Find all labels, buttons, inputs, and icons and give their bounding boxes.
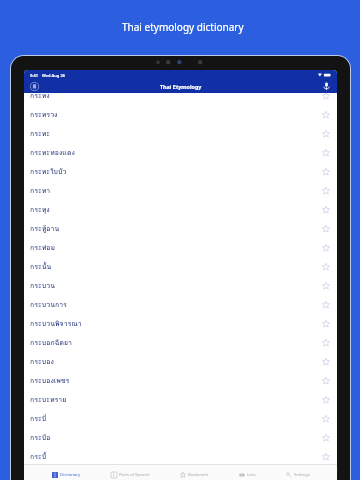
button[interactable]: กระบองเพชร — [24, 371, 337, 390]
staticText: Thai Etymology — [160, 83, 202, 90]
button[interactable]: กระทง — [24, 86, 337, 105]
button[interactable]: กระท่อม — [24, 238, 337, 257]
button[interactable]: กระบอง — [24, 352, 337, 371]
staticText: Lists — [247, 472, 256, 478]
staticText: กระบี่ — [30, 413, 47, 424]
staticText: 9:41 — [30, 73, 38, 78]
button[interactable]: Parts of Speech — [111, 465, 150, 480]
button[interactable]: กระบวน — [24, 276, 337, 295]
button[interactable]: Lists — [239, 465, 256, 480]
staticText: กระบวน — [30, 280, 55, 291]
staticText: กระนั้น — [30, 261, 52, 272]
button[interactable]: กระนั้น — [24, 257, 337, 276]
button[interactable]: Bookmark — [180, 465, 209, 480]
staticText: Thai etymology dictionary — [122, 20, 244, 34]
button[interactable]: กระบี้ — [24, 447, 337, 464]
staticText: กระทุง — [30, 204, 50, 215]
staticText: Parts of Speech — [119, 472, 150, 478]
button[interactable]: Account — [28, 80, 41, 93]
button[interactable]: กระบอกฉีดยา — [24, 333, 337, 352]
staticText: กระบี้ — [30, 451, 47, 462]
button[interactable]: กระบี่ — [24, 409, 337, 428]
staticText: กระทา — [30, 185, 51, 196]
button[interactable]: กระบือ — [24, 428, 337, 447]
button[interactable]: Settings — [286, 465, 310, 480]
button[interactable]: กระทุง — [24, 200, 337, 219]
staticText: กระบือ — [30, 432, 51, 443]
staticText: กระทรวง — [30, 109, 58, 120]
staticText: กระทะ — [30, 128, 51, 139]
staticText: Dictionary — [60, 472, 81, 478]
staticText: Settings — [294, 472, 310, 478]
staticText: Wed Aug 26 — [42, 73, 65, 78]
staticText: กระทง — [30, 90, 50, 101]
staticText: กระบอกฉีดยา — [30, 337, 72, 348]
button[interactable]: กระบวนพิจารณา — [24, 314, 337, 333]
button[interactable]: กระทะใบบัว — [24, 162, 337, 181]
button[interactable]: กระบะทราย — [24, 390, 337, 409]
staticText: กระบอง — [30, 356, 54, 367]
staticText: กระบวนพิจารณา — [30, 318, 82, 329]
staticText: กระบวนการ — [30, 299, 67, 310]
button[interactable]: Voice search — [320, 80, 333, 93]
staticText: กระทะทองแดง — [30, 147, 75, 158]
button[interactable]: กระบวนการ — [24, 295, 337, 314]
button[interactable]: กระทา — [24, 181, 337, 200]
staticText: กระทู้อาน — [30, 223, 60, 234]
button[interactable]: กระทรวง — [24, 105, 337, 124]
staticText: กระทะใบบัว — [30, 166, 67, 177]
button[interactable]: กระทะทองแดง — [24, 143, 337, 162]
staticText: กระบองเพชร — [30, 375, 70, 386]
staticText: กระท่อม — [30, 242, 56, 253]
staticText: Bookmark — [188, 472, 209, 478]
button[interactable]: กระทู้อาน — [24, 219, 337, 238]
button[interactable]: กระทะ — [24, 124, 337, 143]
button[interactable]: Dictionary — [52, 465, 81, 480]
staticText: กระบะทราย — [30, 394, 67, 405]
